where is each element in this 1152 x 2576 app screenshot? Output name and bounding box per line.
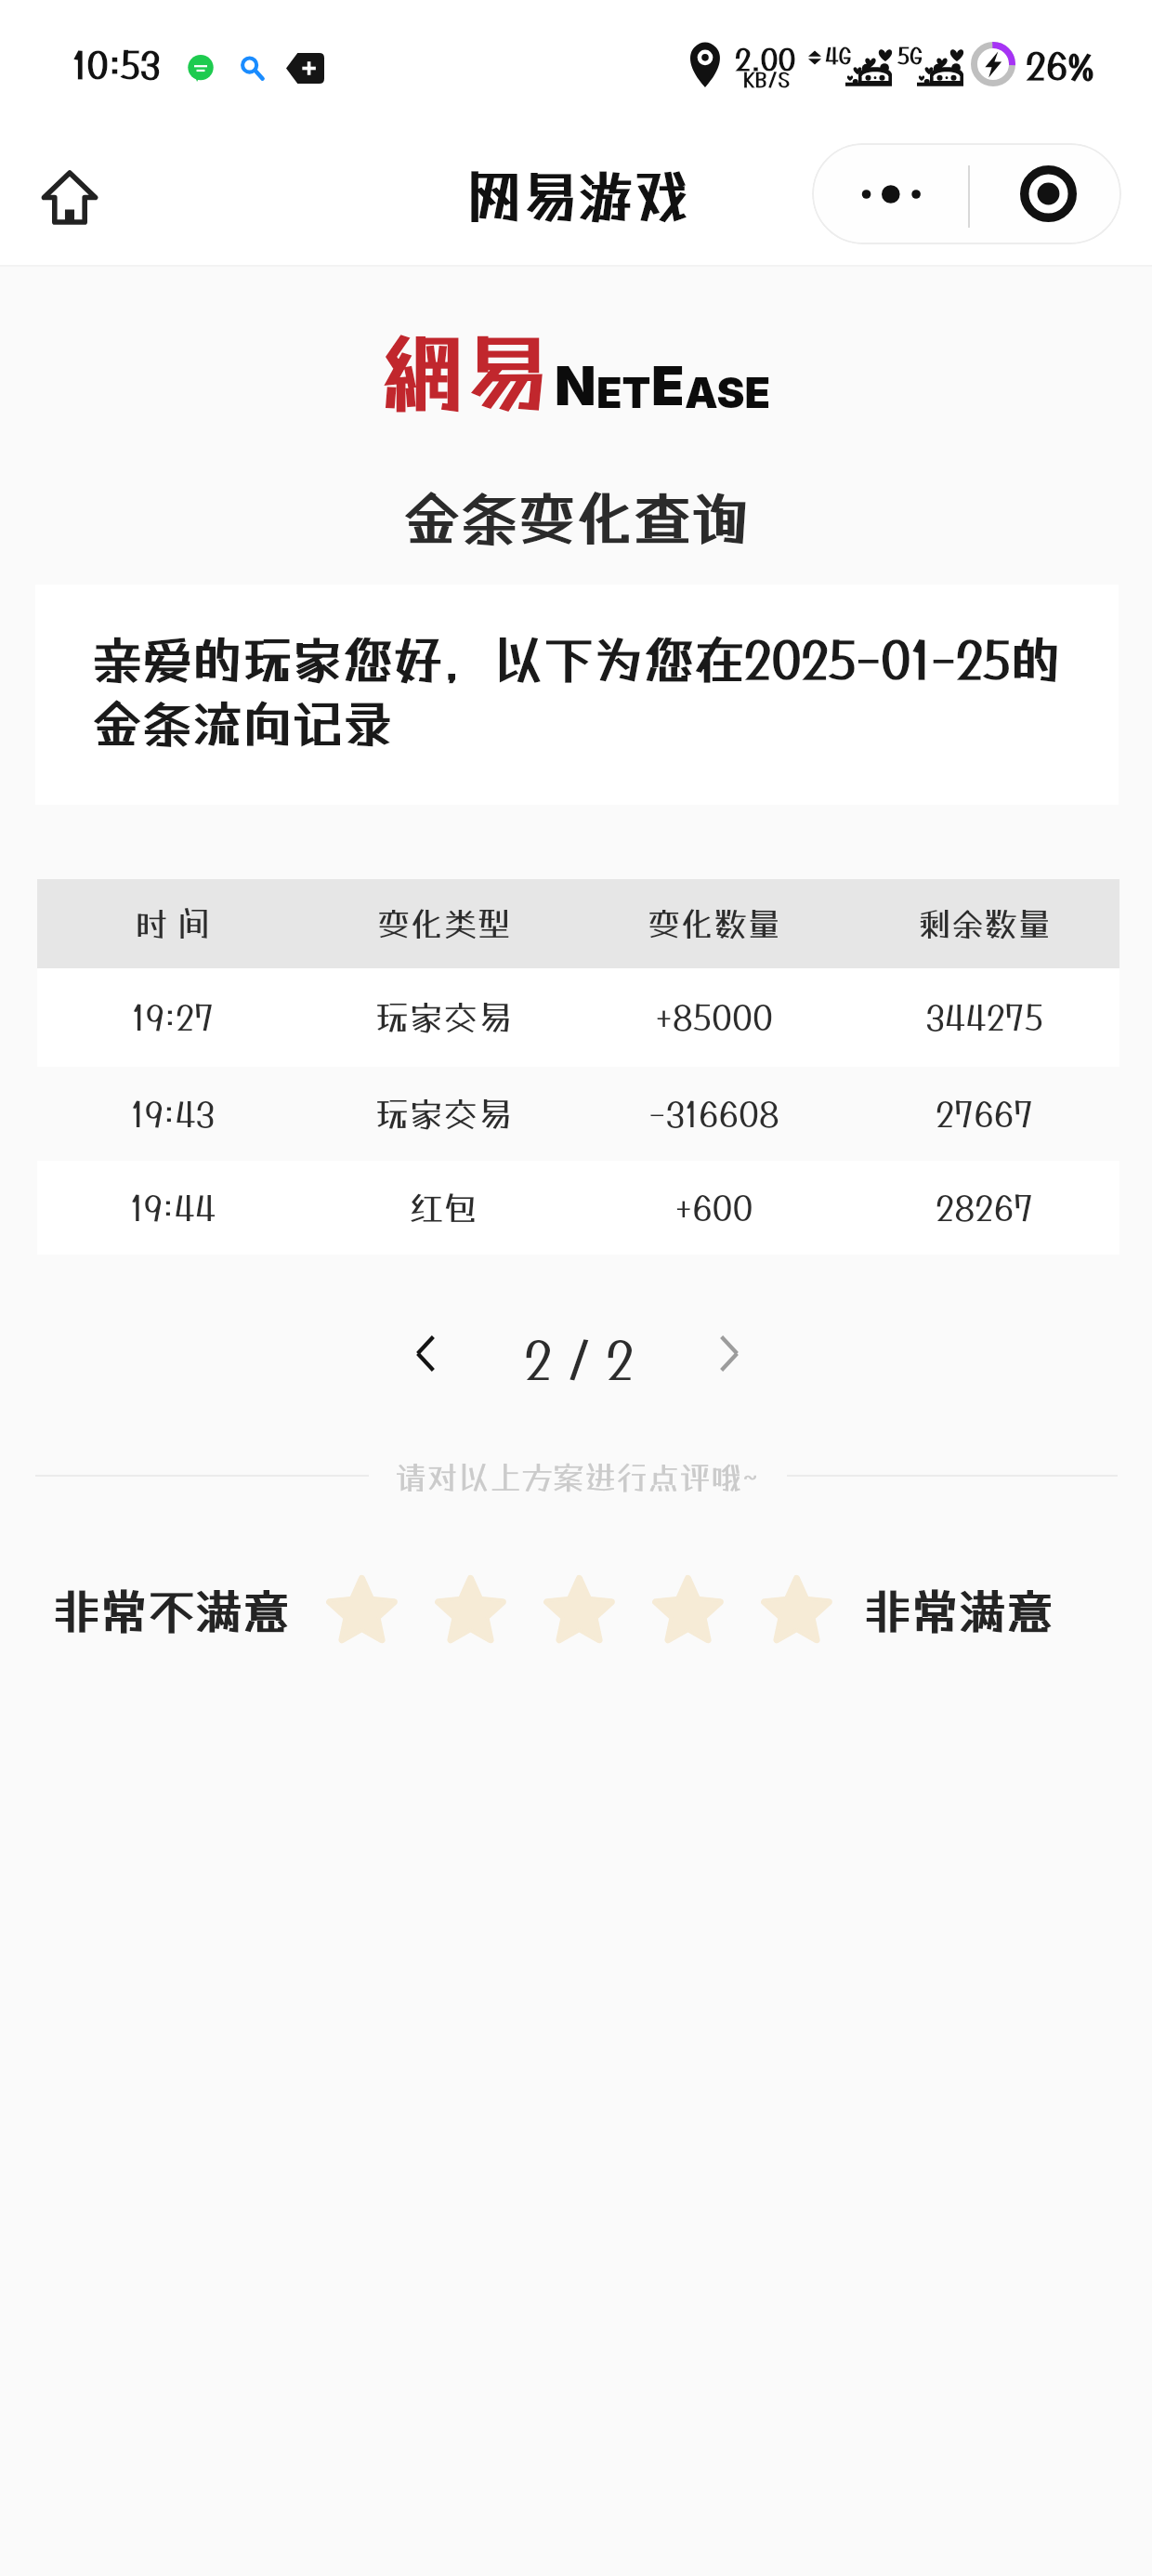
button[interactable]: Rate 2 stars <box>437 1575 504 1643</box>
staticText: KB/S <box>743 67 791 91</box>
staticText: 2.00 <box>735 42 796 77</box>
staticText: -316608 <box>579 1094 849 1135</box>
staticText: 27667 <box>849 1094 1119 1135</box>
staticText: ET <box>596 367 651 417</box>
staticText: 19:27 <box>37 997 308 1038</box>
staticText: 时 间 <box>37 904 308 943</box>
staticText: 2 / 2 <box>524 1329 635 1390</box>
button[interactable]: Home <box>19 146 121 248</box>
button[interactable]: Rate 4 stars <box>654 1575 722 1643</box>
staticText: 19:44 <box>37 1188 308 1229</box>
button[interactable]: Rate 3 stars <box>545 1575 613 1643</box>
staticText: 非常满意 <box>864 1584 1054 1639</box>
staticText: 红包 <box>308 1188 579 1229</box>
staticText: 非常不满意 <box>53 1584 291 1639</box>
staticText: 玩家交易 <box>308 1094 579 1135</box>
staticText: 19:43 <box>37 1094 308 1135</box>
staticText: N <box>555 353 596 418</box>
staticText: 5G <box>897 42 923 68</box>
staticText: 请对以上方案进行点评哦~ <box>395 1459 758 1496</box>
button[interactable]: More options <box>812 143 968 244</box>
button[interactable]: Next page <box>685 1308 774 1398</box>
staticText: 4G <box>825 42 852 68</box>
staticText: 剩余数量 <box>849 904 1119 943</box>
staticText: 26% <box>1026 44 1094 87</box>
staticText: 10:53 <box>72 44 161 86</box>
staticText: 网易游戏 <box>466 164 689 230</box>
staticText: +85000 <box>579 997 849 1038</box>
staticText: 变化类型 <box>308 904 579 943</box>
staticText: 344275 <box>849 997 1119 1038</box>
staticText: +600 <box>579 1188 849 1229</box>
button[interactable]: Previous page <box>381 1308 470 1398</box>
staticText: 網易 <box>379 322 551 424</box>
button[interactable]: Refresh <box>1052 618 1126 692</box>
staticText: E <box>651 353 685 418</box>
staticText: 金条变化查询 <box>0 484 1152 552</box>
staticText: ASE <box>685 367 771 417</box>
button[interactable]: Rate 1 stars <box>328 1575 396 1643</box>
staticText: 28267 <box>849 1188 1119 1229</box>
staticText: 变化数量 <box>579 904 849 943</box>
button[interactable]: Close mini program <box>975 143 1121 244</box>
button[interactable]: Rate 5 stars <box>763 1575 831 1643</box>
staticText: 玩家交易 <box>308 997 579 1038</box>
staticText: 亲爱的玩家您好，以下为您在2025-01-25的金条流向记录 <box>92 630 1086 754</box>
